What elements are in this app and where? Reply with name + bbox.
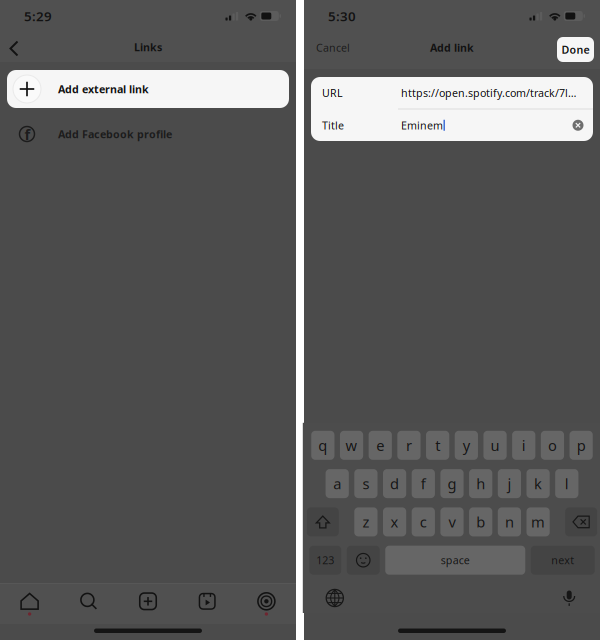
button[interactable]: j <box>498 469 521 498</box>
button[interactable]: Cancel <box>305 32 361 62</box>
button[interactable]: e <box>369 431 392 460</box>
button[interactable]: f <box>0 116 296 152</box>
button[interactable]: z <box>354 507 377 536</box>
button[interactable]: r <box>397 431 421 460</box>
button[interactable]: y <box>455 431 478 460</box>
staticText: z <box>362 512 369 532</box>
staticText: m <box>531 512 545 532</box>
staticText: s <box>362 474 369 493</box>
staticText: a <box>333 474 341 493</box>
button[interactable]: p <box>569 431 593 460</box>
staticText: 5:29 <box>24 7 52 25</box>
button[interactable]: g <box>440 469 464 498</box>
staticText: Eminem <box>401 118 443 132</box>
staticText: Add external link <box>58 82 149 96</box>
button[interactable]: Emoji <box>347 546 380 575</box>
button[interactable]: x <box>383 507 406 536</box>
button[interactable]: space <box>385 546 525 575</box>
staticText: o <box>548 436 557 455</box>
staticText: Title <box>322 118 344 132</box>
button[interactable]: i <box>512 431 535 460</box>
staticText: f <box>24 124 30 144</box>
staticText: j <box>507 474 511 493</box>
button[interactable]: Profile <box>237 585 296 623</box>
button[interactable]: h <box>469 469 492 498</box>
button[interactable]: q <box>311 431 334 460</box>
button[interactable]: d <box>383 469 406 498</box>
button[interactable]: v <box>440 507 464 536</box>
staticText: n <box>505 512 514 532</box>
staticText: x <box>391 512 399 532</box>
button[interactable]: m <box>526 507 550 536</box>
button[interactable]: c <box>412 507 435 536</box>
staticText: k <box>534 474 542 493</box>
button[interactable]: Switch keyboard <box>317 584 353 612</box>
button[interactable]: s <box>354 469 377 498</box>
staticText: e <box>376 436 384 455</box>
button[interactable]: w <box>340 431 363 460</box>
staticText: Done <box>561 42 589 57</box>
button[interactable]: Reels <box>178 585 237 623</box>
button[interactable]: Search <box>59 585 118 623</box>
staticText: d <box>390 474 399 493</box>
button[interactable]: Shift <box>307 507 339 536</box>
staticText: f <box>421 474 426 493</box>
staticText: space <box>441 553 470 567</box>
staticText: Cancel <box>316 40 350 55</box>
staticText: p <box>577 436 586 455</box>
button[interactable]: o <box>541 431 564 460</box>
staticText: w <box>346 436 358 455</box>
button[interactable]: Done <box>557 35 594 60</box>
staticText: 5:30 <box>328 7 356 25</box>
button[interactable]: l <box>555 469 578 498</box>
button[interactable]: k <box>526 469 550 498</box>
button[interactable]: 123 <box>309 546 341 575</box>
staticText: u <box>491 436 500 455</box>
staticText: 123 <box>316 553 334 567</box>
staticText: URL <box>322 86 343 100</box>
button[interactable]: next <box>531 546 595 575</box>
button[interactable]: Clear text <box>569 116 587 134</box>
staticText: l <box>565 474 569 493</box>
staticText: next <box>551 553 574 567</box>
button[interactable]: a <box>326 469 349 498</box>
staticText: v <box>448 512 455 532</box>
staticText: https://open.spotify.com/track/7l… <box>401 86 576 100</box>
button[interactable]: n <box>498 507 521 536</box>
staticText: h <box>476 474 485 493</box>
button[interactable]: t <box>426 431 449 460</box>
button[interactable]: f <box>412 469 435 498</box>
button[interactable]: Add external link <box>7 70 289 108</box>
staticText: Add Facebook profile <box>58 127 172 141</box>
button[interactable]: Create <box>118 585 178 623</box>
staticText: q <box>318 436 327 455</box>
button[interactable]: Home <box>0 585 59 623</box>
staticText: b <box>476 512 485 532</box>
staticText: r <box>406 436 412 455</box>
staticText: y <box>463 436 470 455</box>
staticText: g <box>447 474 456 493</box>
button[interactable]: Delete <box>565 507 597 536</box>
button[interactable]: Back <box>0 32 28 62</box>
staticText: i <box>522 436 526 455</box>
staticText: c <box>420 512 427 532</box>
button[interactable]: u <box>483 431 507 460</box>
button[interactable]: b <box>469 507 492 536</box>
staticText: t <box>435 436 440 455</box>
staticText: Links <box>134 40 162 54</box>
staticText: Add link <box>430 40 474 55</box>
button[interactable]: Dictate <box>551 584 587 612</box>
